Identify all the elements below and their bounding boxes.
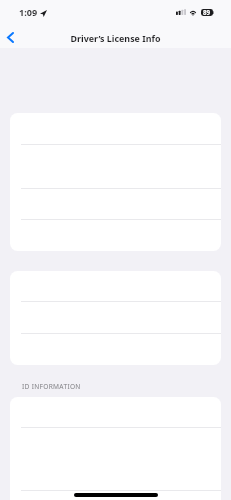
button[interactable]: [10, 491, 221, 500]
button[interactable]: Back: [0, 22, 30, 53]
staticText: ID INFORMATION: [22, 382, 81, 391]
staticText: Driver’s License Info: [0, 32, 231, 44]
staticText: 89: [203, 8, 211, 16]
staticText: 1:09: [19, 6, 38, 18]
